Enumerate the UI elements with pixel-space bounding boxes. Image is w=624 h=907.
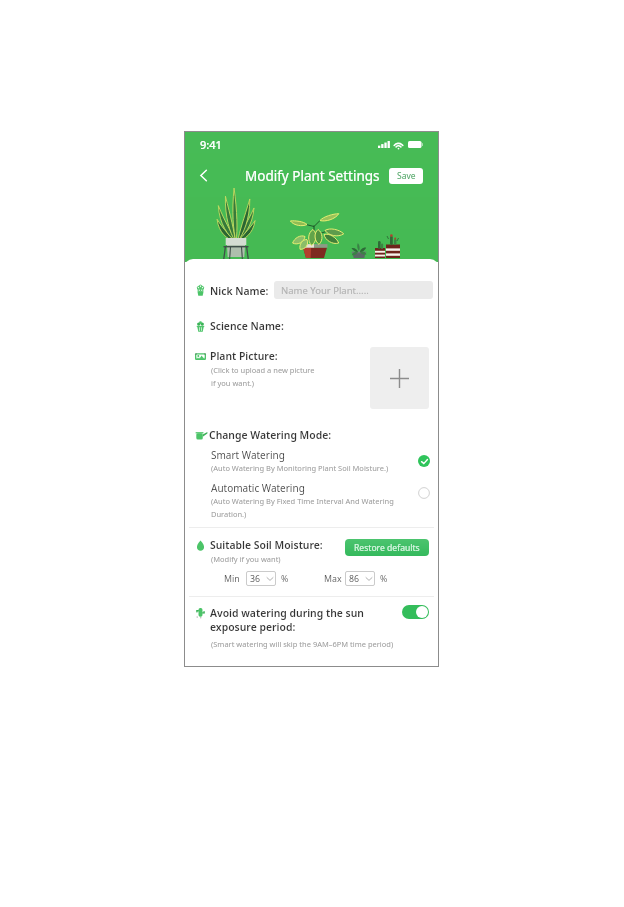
staticText: % (281, 573, 289, 585)
staticText: Min (224, 573, 240, 585)
button[interactable]: 86 (345, 571, 375, 586)
staticText: (Smart watering will skip the 9AM–6PM ti… (211, 639, 394, 649)
button[interactable]: Smart Watering (414, 451, 434, 471)
staticText: 36 (250, 573, 261, 585)
staticText: Avoid watering during the sun exposure p… (210, 606, 364, 634)
staticText: Name Your Plant..... (281, 284, 369, 297)
button[interactable]: Back (190, 162, 216, 188)
staticText: Restore defaults (354, 542, 420, 554)
button[interactable]: Toggle avoid sun exposure watering (402, 605, 429, 619)
staticText: Plant Picture: (210, 349, 278, 363)
button[interactable]: Save (389, 168, 423, 184)
staticText: (Auto Watering By Fixed Time Interval An… (211, 496, 394, 519)
staticText: (Auto Watering By Monitoring Plant Soil … (211, 463, 389, 473)
staticText: 9:41 (200, 137, 222, 152)
staticText: Change Watering Mode: (209, 428, 332, 442)
staticText: Nick Name: (210, 284, 269, 298)
button[interactable]: Upload plant picture (370, 347, 429, 409)
staticText: Max (324, 573, 342, 585)
button[interactable]: Name Your Plant..... (274, 281, 433, 299)
staticText: (Click to upload a new picture if you wa… (211, 365, 315, 388)
staticText: 86 (349, 573, 360, 585)
staticText: Save (397, 170, 416, 182)
staticText: Smart Watering (211, 448, 285, 462)
staticText: Modify Plant Settings (245, 167, 380, 185)
staticText: (Modify if you want) (211, 554, 281, 564)
button[interactable]: 36 (246, 571, 276, 586)
staticText: % (380, 573, 388, 585)
staticText: Suitable Soil Moisture: (210, 538, 323, 552)
button[interactable]: Restore defaults (345, 539, 429, 556)
button[interactable]: Automatic Watering (414, 483, 434, 503)
staticText: Automatic Watering (211, 481, 305, 495)
staticText: Science Name: (210, 319, 284, 333)
